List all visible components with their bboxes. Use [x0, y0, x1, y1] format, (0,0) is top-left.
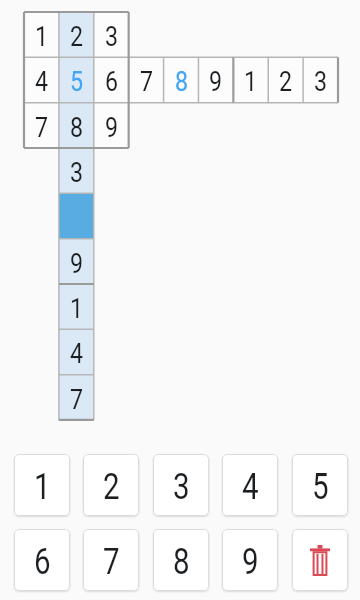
- staticText: 5: [312, 466, 329, 508]
- staticText: 7: [103, 541, 120, 583]
- staticText: 4: [242, 466, 259, 508]
- button[interactable]: 1: [24, 12, 59, 57]
- staticText: 1: [244, 66, 258, 98]
- button[interactable]: 2: [83, 454, 139, 516]
- button[interactable]: 4: [59, 329, 94, 374]
- button[interactable]: 8: [153, 529, 209, 591]
- button[interactable]: 1: [233, 57, 268, 102]
- staticText: 1: [34, 466, 51, 508]
- staticText: 5: [70, 66, 84, 98]
- button[interactable]: [59, 193, 94, 238]
- button[interactable]: 3: [59, 148, 94, 193]
- staticText: 3: [314, 66, 328, 98]
- staticText: 8: [173, 541, 190, 583]
- staticText: 3: [105, 21, 119, 53]
- button[interactable]: 8: [164, 57, 199, 102]
- staticText: 7: [140, 66, 154, 98]
- button[interactable]: 1: [14, 454, 70, 516]
- staticText: 6: [105, 66, 119, 98]
- staticText: 1: [70, 293, 84, 325]
- staticText: 2: [103, 466, 120, 508]
- staticText: 2: [70, 21, 84, 53]
- staticText: 3: [173, 466, 190, 508]
- staticText: 7: [70, 384, 84, 416]
- staticText: 6: [34, 541, 51, 583]
- button[interactable]: 7: [129, 57, 164, 102]
- button[interactable]: 3: [153, 454, 209, 516]
- staticText: 9: [70, 248, 84, 280]
- staticText: 8: [70, 112, 84, 144]
- button[interactable]: 9: [222, 529, 278, 591]
- staticText: 4: [70, 338, 84, 370]
- button[interactable]: 7: [24, 103, 59, 148]
- staticText: 9: [242, 541, 259, 583]
- staticText: 8: [175, 66, 189, 98]
- staticText: 1: [35, 21, 49, 53]
- button[interactable]: 6: [94, 57, 129, 102]
- button[interactable]: Delete: [292, 529, 348, 591]
- button[interactable]: 9: [94, 103, 129, 148]
- button[interactable]: 4: [24, 57, 59, 102]
- button[interactable]: 5: [59, 57, 94, 102]
- button[interactable]: 2: [268, 57, 303, 102]
- staticText: 2: [279, 66, 293, 98]
- button[interactable]: 2: [59, 12, 94, 57]
- button[interactable]: 7: [83, 529, 139, 591]
- button[interactable]: 3: [303, 57, 338, 102]
- button[interactable]: 7: [59, 375, 94, 420]
- staticText: 9: [105, 112, 119, 144]
- button[interactable]: 4: [222, 454, 278, 516]
- staticText: 7: [35, 112, 49, 144]
- staticText: 4: [35, 66, 49, 98]
- button[interactable]: 1: [59, 284, 94, 329]
- button[interactable]: 8: [59, 103, 94, 148]
- staticText: 9: [209, 66, 223, 98]
- button[interactable]: 9: [198, 57, 233, 102]
- button[interactable]: 9: [59, 239, 94, 284]
- staticText: 3: [70, 157, 84, 189]
- button[interactable]: 6: [14, 529, 70, 591]
- button[interactable]: 5: [292, 454, 348, 516]
- button[interactable]: 3: [94, 12, 129, 57]
